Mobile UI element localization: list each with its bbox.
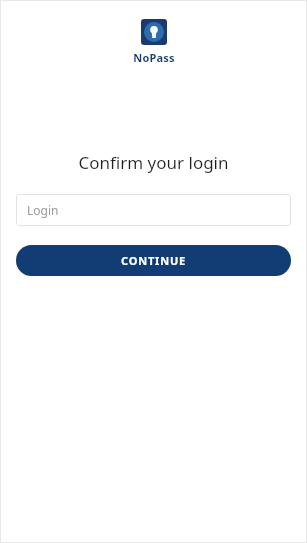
button[interactable]: Login — [16, 194, 291, 226]
staticText: Confirm your login — [78, 151, 229, 174]
staticText: CONTINUE — [121, 253, 186, 268]
staticText: NoPass — [133, 50, 175, 65]
staticText: Login — [27, 202, 59, 218]
button[interactable]: CONTINUE — [16, 245, 291, 276]
